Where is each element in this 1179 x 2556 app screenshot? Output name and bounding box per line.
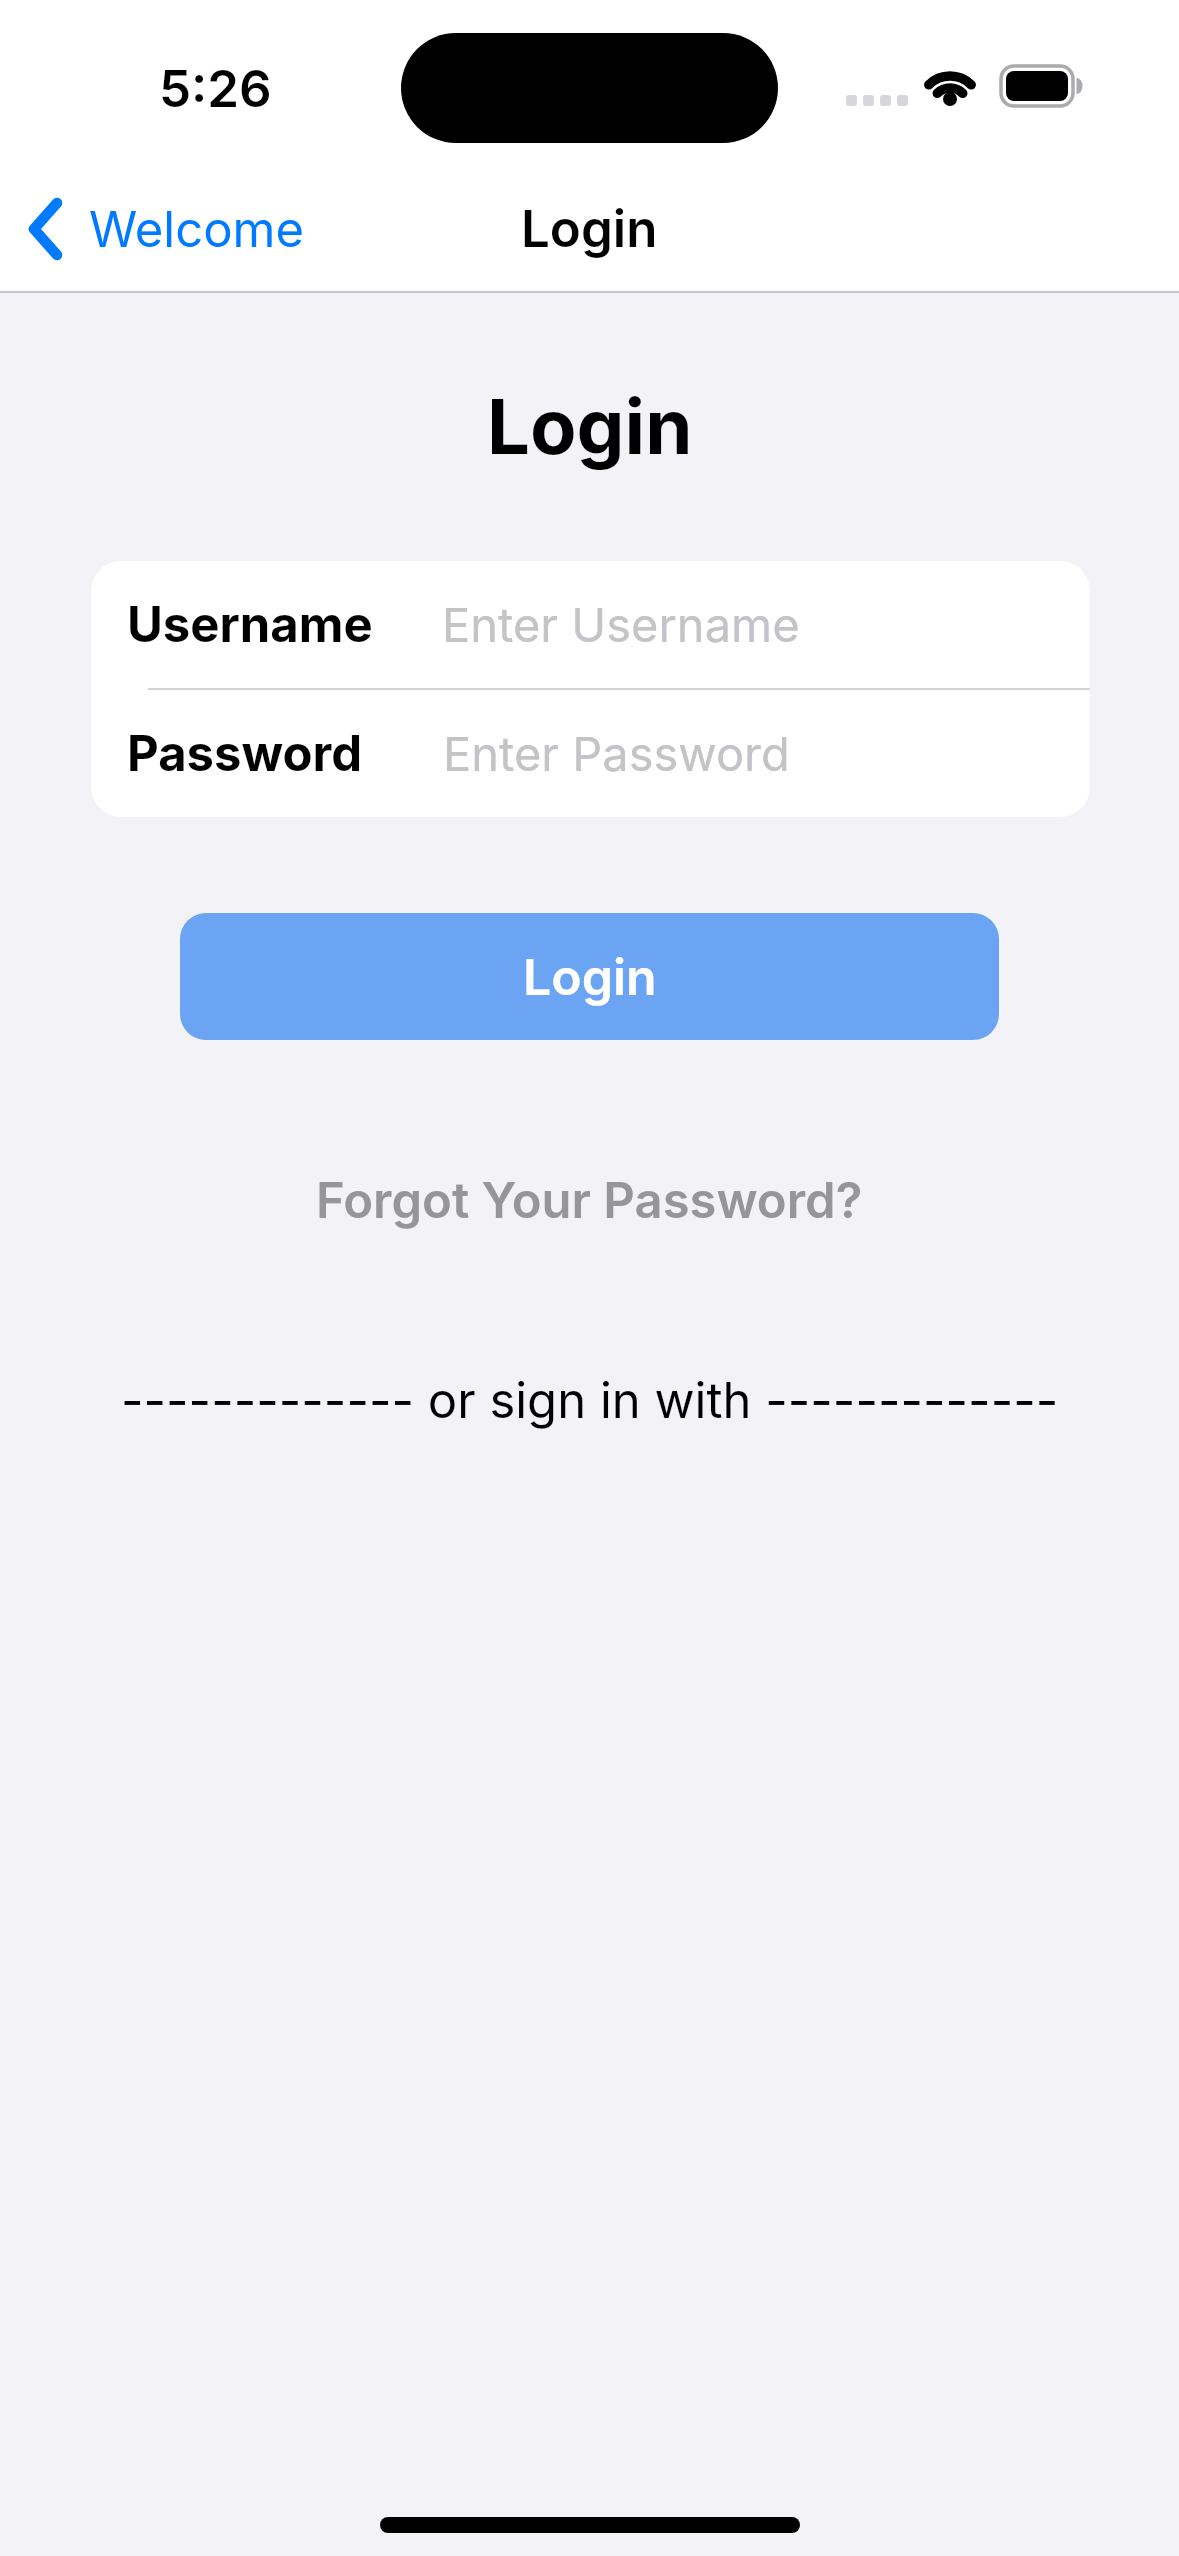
staticText: Login xyxy=(487,380,693,472)
staticText: Password xyxy=(127,724,363,783)
staticText: 5:26 xyxy=(159,58,272,118)
staticText: Forgot Your Password? xyxy=(316,1171,863,1230)
staticText: ------------- or sign in with ----------… xyxy=(121,1371,1059,1430)
staticText: Username xyxy=(127,595,373,654)
staticText: Enter Password xyxy=(443,725,790,782)
staticText: Login xyxy=(521,198,658,260)
button[interactable]: Password xyxy=(91,690,1090,817)
button[interactable]: Welcome xyxy=(27,196,305,262)
staticText: Welcome xyxy=(89,200,305,259)
staticText: Enter Username xyxy=(442,596,800,653)
button[interactable]: Username xyxy=(91,561,1090,688)
staticText: Login xyxy=(523,947,657,1007)
button[interactable]: Forgot Your Password? xyxy=(0,1165,1179,1235)
button[interactable]: Login xyxy=(180,913,999,1040)
